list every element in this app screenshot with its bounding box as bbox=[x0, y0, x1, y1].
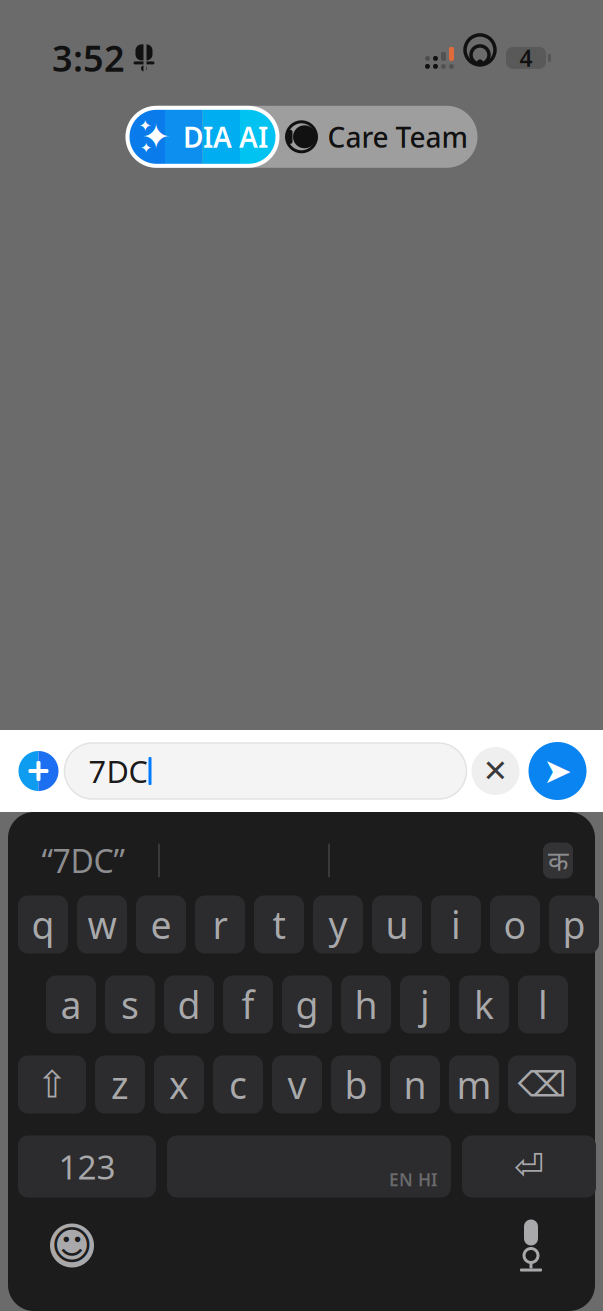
button[interactable]: Emoji bbox=[42, 1215, 102, 1275]
button[interactable]: Send bbox=[524, 738, 590, 804]
staticText: ✦ bbox=[141, 117, 170, 156]
button[interactable]: r bbox=[195, 895, 245, 953]
staticText: m bbox=[456, 1060, 491, 1109]
staticText: EN HI bbox=[389, 1168, 437, 1191]
button[interactable]: l bbox=[518, 975, 568, 1033]
button[interactable]: o bbox=[490, 895, 540, 953]
button[interactable]: p bbox=[549, 895, 599, 953]
button[interactable]: 7DC bbox=[64, 743, 466, 799]
staticText: w bbox=[87, 900, 116, 949]
button[interactable]: x bbox=[154, 1055, 204, 1113]
staticText: i bbox=[451, 900, 461, 949]
button[interactable]: b bbox=[331, 1055, 381, 1113]
staticText: p bbox=[562, 900, 585, 949]
button[interactable]: a bbox=[46, 975, 96, 1033]
button[interactable]: Delete bbox=[508, 1055, 576, 1113]
button[interactable]: v bbox=[272, 1055, 322, 1113]
staticText: ⌫ bbox=[517, 1065, 566, 1104]
staticText: 7DC bbox=[88, 751, 147, 791]
staticText: l bbox=[538, 980, 548, 1029]
staticText: d bbox=[177, 980, 200, 1029]
staticText: क bbox=[548, 843, 568, 878]
button[interactable]: y bbox=[313, 895, 363, 953]
staticText: Care Team bbox=[327, 118, 468, 155]
staticText: ✦ bbox=[140, 139, 152, 156]
button[interactable]: Clear text bbox=[466, 742, 524, 800]
staticText: t bbox=[272, 900, 285, 949]
button[interactable]: q bbox=[18, 895, 68, 953]
staticText: k bbox=[474, 980, 494, 1029]
button[interactable]: f bbox=[223, 975, 273, 1033]
staticText: s bbox=[121, 980, 139, 1029]
button[interactable]: Space bbox=[167, 1135, 451, 1197]
staticText: 123 bbox=[58, 1144, 115, 1189]
staticText: z bbox=[111, 1060, 129, 1109]
button[interactable]: Dictation bbox=[501, 1212, 561, 1278]
button[interactable]: k bbox=[459, 975, 509, 1033]
staticText: ✦ bbox=[138, 117, 151, 135]
button[interactable]: m bbox=[449, 1055, 499, 1113]
staticText: e bbox=[150, 900, 171, 949]
staticText: a bbox=[60, 980, 81, 1029]
button[interactable]: Care Team bbox=[277, 108, 475, 166]
button[interactable]: c bbox=[213, 1055, 263, 1113]
staticText: u bbox=[385, 900, 408, 949]
button[interactable]: g bbox=[282, 975, 332, 1033]
button[interactable]: w bbox=[77, 895, 127, 953]
staticText: ✕ bbox=[482, 754, 508, 788]
staticText: ⇧ bbox=[36, 1063, 67, 1106]
button[interactable]: t bbox=[254, 895, 304, 953]
staticText: h bbox=[354, 980, 377, 1029]
button[interactable]: s bbox=[105, 975, 155, 1033]
button[interactable]: z bbox=[95, 1055, 145, 1113]
button[interactable]: u bbox=[372, 895, 422, 953]
staticText: o bbox=[503, 900, 526, 949]
staticText: 3:52 bbox=[52, 34, 125, 82]
button[interactable]: Add attachment bbox=[12, 745, 64, 797]
staticText: “7DC” bbox=[41, 839, 124, 882]
button[interactable]: j bbox=[400, 975, 450, 1033]
staticText: r bbox=[212, 900, 227, 949]
staticText: q bbox=[31, 900, 54, 949]
staticText: v bbox=[287, 1060, 306, 1109]
button[interactable]: n bbox=[390, 1055, 440, 1113]
staticText: y bbox=[328, 900, 347, 949]
button[interactable]: d bbox=[164, 975, 214, 1033]
staticText: f bbox=[241, 980, 254, 1029]
staticText: j bbox=[420, 980, 430, 1029]
staticText: DIA AI bbox=[183, 118, 268, 155]
staticText: n bbox=[403, 1060, 426, 1109]
staticText: 4 bbox=[519, 43, 532, 73]
staticText: ➤ bbox=[543, 751, 572, 791]
staticText: x bbox=[169, 1060, 189, 1109]
staticText: b bbox=[344, 1060, 367, 1109]
staticText: ⏎ bbox=[514, 1146, 544, 1187]
staticText: c bbox=[229, 1060, 247, 1109]
button[interactable]: e bbox=[136, 895, 186, 953]
staticText: g bbox=[295, 980, 318, 1029]
button[interactable]: Return bbox=[462, 1135, 596, 1197]
button[interactable]: Shift bbox=[18, 1055, 86, 1113]
button[interactable]: i bbox=[431, 895, 481, 953]
button[interactable]: h bbox=[341, 975, 391, 1033]
button[interactable]: ✦ bbox=[127, 108, 277, 166]
staticText: ☺ bbox=[51, 1223, 93, 1268]
button[interactable]: 123 bbox=[18, 1135, 156, 1197]
